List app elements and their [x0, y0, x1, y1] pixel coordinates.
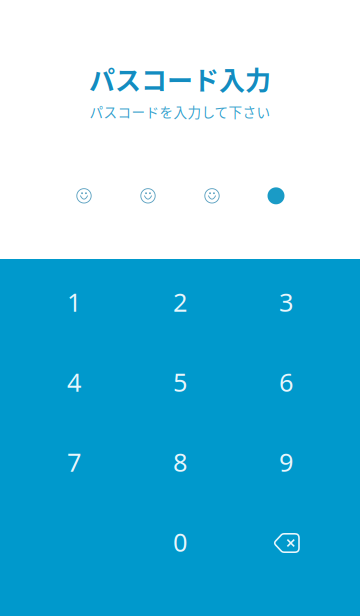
staticText: 5	[173, 365, 187, 399]
button[interactable]: 2	[127, 262, 233, 342]
staticText: 0	[173, 525, 187, 559]
button[interactable]: 4	[21, 342, 127, 422]
staticText: 8	[173, 445, 187, 479]
button[interactable]: 6	[233, 342, 339, 422]
button[interactable]: 3	[233, 262, 339, 342]
staticText: 1	[67, 285, 81, 319]
button[interactable]: 9	[233, 422, 339, 502]
staticText: 7	[67, 445, 81, 479]
button[interactable]: 7	[21, 422, 127, 502]
staticText: 6	[279, 365, 293, 399]
staticText: パスコード入力	[89, 60, 271, 98]
staticText: 3	[279, 285, 293, 319]
button[interactable]: 1	[21, 262, 127, 342]
button[interactable]: 0	[127, 502, 233, 582]
button[interactable]: 8	[127, 422, 233, 502]
button[interactable]: Delete	[233, 502, 339, 582]
staticText: 2	[173, 285, 187, 319]
button[interactable]: 5	[127, 342, 233, 422]
staticText: 4	[67, 365, 81, 399]
staticText: パスコードを入力して下さい	[89, 102, 270, 121]
staticText: 9	[279, 445, 293, 479]
